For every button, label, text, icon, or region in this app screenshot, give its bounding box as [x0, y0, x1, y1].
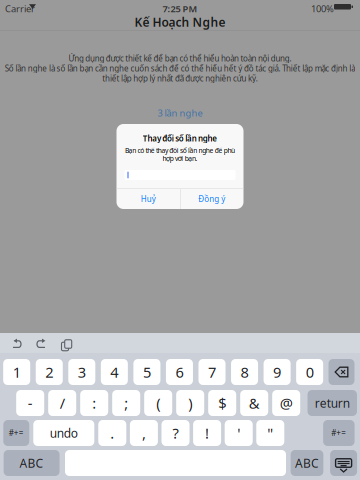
- staticText: #+=: [331, 428, 346, 438]
- staticText: 7:25 PM: [162, 2, 197, 15]
- staticText: Carrier: [5, 2, 35, 15]
- staticText: Thay đổi số lần nghe: [143, 133, 217, 144]
- staticText: 1: [13, 362, 21, 382]
- button[interactable]: 8: [231, 359, 258, 385]
- button[interactable]: ): [176, 390, 204, 416]
- staticText: 5: [143, 362, 151, 382]
- staticText: /: [60, 393, 65, 413]
- staticText: @: [280, 393, 293, 413]
- staticText: Bạn có thể thay đổi số lần nghe để phù: [125, 146, 235, 155]
- staticText: ABC: [20, 455, 44, 471]
- staticText: hợp với bạn.: [162, 154, 198, 163]
- button[interactable]: 3 lần nghe: [0, 106, 360, 120]
- button[interactable]: :: [80, 390, 108, 416]
- staticText: undo: [50, 425, 78, 441]
- staticText: ): [188, 393, 192, 413]
- button[interactable]: Delete: [328, 359, 354, 385]
- staticText: ": [267, 423, 273, 443]
- button[interactable]: Kế Hoạch Nghe: [0, 14, 360, 30]
- button[interactable]: #+=: [323, 420, 355, 446]
- staticText: 8: [240, 362, 248, 382]
- staticText: return: [315, 395, 350, 411]
- staticText: 3 lần nghe: [157, 107, 202, 119]
- staticText: thiết lập hợp lý nhất đã được nghiên cứu…: [102, 73, 258, 84]
- button[interactable]: Undo: [8, 335, 28, 353]
- button[interactable]: 5: [133, 359, 160, 385]
- button[interactable]: 3: [68, 359, 95, 385]
- staticText: Số lần nghe là số lần bạn cần nghe cuốn …: [5, 63, 355, 74]
- button[interactable]: /: [48, 390, 76, 416]
- staticText: (: [156, 393, 160, 413]
- staticText: ,: [142, 423, 146, 443]
- staticText: Kế Hoạch Nghe: [134, 14, 225, 30]
- staticText: 100%: [311, 2, 334, 15]
- button[interactable]: 2: [36, 359, 63, 385]
- staticText: 7: [208, 362, 216, 382]
- button[interactable]: Đồng ý: [180, 189, 243, 209]
- staticText: 6: [175, 362, 183, 382]
- button[interactable]: 7: [198, 359, 225, 385]
- staticText: Huỷ: [141, 194, 156, 204]
- button[interactable]: return: [307, 390, 357, 416]
- staticText: ?: [172, 423, 178, 443]
- staticText: 0: [306, 362, 314, 382]
- button[interactable]: undo: [33, 420, 94, 446]
- button[interactable]: Huỷ: [116, 189, 180, 209]
- staticText: 4: [110, 362, 118, 382]
- staticText: &: [249, 393, 260, 413]
- button[interactable]: 0: [296, 359, 323, 385]
- button[interactable]: Letters keyboard: [291, 450, 323, 476]
- staticText: #+=: [9, 428, 24, 438]
- button[interactable]: -: [16, 390, 44, 416]
- button[interactable]: $: [208, 390, 236, 416]
- button[interactable]: 6: [166, 359, 193, 385]
- button[interactable]: ,: [130, 420, 158, 446]
- button[interactable]: Letters keyboard: [4, 450, 60, 476]
- button[interactable]: Paste: [55, 335, 75, 353]
- staticText: ABC: [295, 455, 319, 471]
- button[interactable]: Hide keyboard: [330, 450, 357, 476]
- staticText: ;: [124, 393, 128, 413]
- button[interactable]: Số lần nghe: [124, 170, 235, 180]
- staticText: -: [28, 393, 33, 413]
- button[interactable]: &: [240, 390, 268, 416]
- button[interactable]: #+=: [3, 420, 29, 446]
- staticText: .: [110, 423, 114, 443]
- button[interactable]: 1: [3, 359, 30, 385]
- staticText: 9: [273, 362, 281, 382]
- staticText: Ứng dụng được thiết kế để bạn có thể hiể…: [68, 53, 291, 64]
- staticText: !: [205, 423, 209, 443]
- button[interactable]: .: [98, 420, 126, 446]
- button[interactable]: !: [193, 420, 221, 446]
- button[interactable]: 4: [101, 359, 128, 385]
- button[interactable]: ": [256, 420, 284, 446]
- staticText: 2: [45, 362, 53, 382]
- button[interactable]: ;: [112, 390, 140, 416]
- staticText: :: [92, 393, 96, 413]
- button[interactable]: 9: [264, 359, 291, 385]
- staticText: ': [237, 423, 240, 443]
- staticText: Đồng ý: [198, 194, 225, 204]
- button[interactable]: (: [144, 390, 172, 416]
- button[interactable]: ': [225, 420, 253, 446]
- staticText: 3: [78, 362, 86, 382]
- staticText: $: [218, 393, 226, 413]
- button[interactable]: ?: [161, 420, 189, 446]
- button[interactable]: @: [272, 390, 300, 416]
- button[interactable]: Redo: [31, 335, 51, 353]
